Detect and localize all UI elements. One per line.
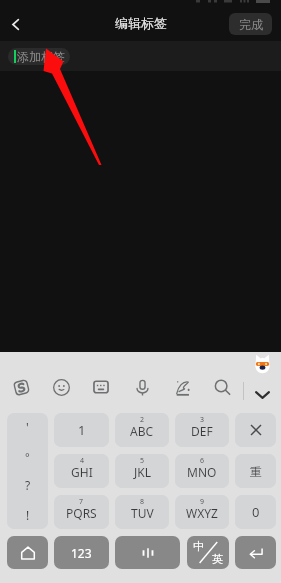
staticText: 0 [252,503,260,521]
button[interactable]: 2 [115,413,169,447]
staticText: ! [26,507,30,523]
staticText: 4 [80,456,85,466]
button[interactable]: Home [7,536,48,569]
button[interactable]: Enter [235,536,276,569]
button[interactable]: Add tag [8,48,70,65]
button[interactable]: Sogou input [7,373,35,401]
button[interactable]: 完成 [229,13,272,35]
staticText: DEF [191,423,213,439]
staticText: 2 [140,415,145,425]
button[interactable]: Assistant [254,354,271,374]
button[interactable]: ' [7,413,48,529]
staticText: JKL [134,464,151,480]
staticText: WXYZ [186,505,218,521]
button[interactable]: Numbers [54,536,109,569]
button[interactable]: Emoji [47,373,75,401]
button[interactable]: Search [208,373,236,401]
button[interactable]: 9 [175,495,229,529]
button[interactable]: Redo [235,454,276,488]
staticText: GHI [71,464,93,480]
staticText: 123 [71,545,92,561]
staticText: TUV [131,505,154,521]
button[interactable]: 0 [235,495,276,529]
staticText: 6 [200,456,205,466]
button[interactable]: Keyboard layout [87,373,115,401]
staticText: ? [25,477,31,493]
staticText: 添加标签 [17,49,65,64]
button[interactable]: Back [3,12,27,36]
staticText: 中 [193,539,204,553]
staticText: 1 [78,421,86,439]
staticText: ° [25,449,30,464]
button[interactable]: 7 [54,495,109,529]
staticText: 7 [79,497,84,507]
button[interactable]: Space [115,536,180,569]
button[interactable]: 4 [54,454,109,488]
staticText: MNO [187,464,217,480]
button[interactable]: Handwriting [168,373,196,401]
button[interactable]: 1 [54,413,109,447]
button[interactable]: Voice input [128,373,156,401]
staticText: 9 [200,497,205,507]
staticText: 重 [250,464,262,479]
staticText: ' [26,419,29,435]
staticText: 3 [200,415,205,425]
staticText: 编辑标签 [115,15,167,31]
button[interactable]: Hide keyboard [250,382,274,406]
staticText: 8 [140,497,145,507]
button[interactable]: Switch Chinese English [187,536,229,569]
staticText: ABC [130,423,154,439]
staticText: 5 [140,456,145,466]
button[interactable]: 3 [175,413,229,447]
button[interactable]: 5 [115,454,169,488]
button[interactable]: 6 [175,454,229,488]
staticText: 英 [212,552,223,566]
staticText: 完成 [239,17,263,32]
staticText: PQRS [66,505,97,521]
button[interactable]: 8 [115,495,169,529]
button[interactable]: Delete [235,413,276,447]
